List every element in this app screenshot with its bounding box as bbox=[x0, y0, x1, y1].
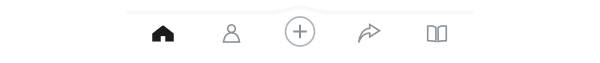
button[interactable]: Share bbox=[334, 0, 403, 63]
button[interactable]: Profile bbox=[197, 0, 266, 63]
button[interactable]: Library bbox=[403, 0, 471, 63]
button[interactable]: Home bbox=[129, 0, 197, 63]
button[interactable]: Create bbox=[266, 0, 334, 63]
